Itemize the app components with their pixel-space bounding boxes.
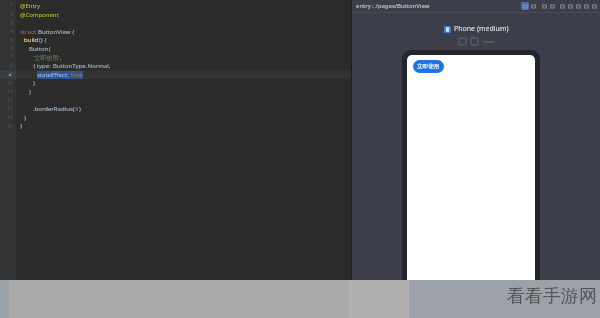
staticText: 看看手游网	[507, 285, 597, 308]
staticText: 5	[10, 37, 13, 44]
staticText: Button	[29, 45, 49, 53]
button[interactable]: Layout	[540, 2, 548, 10]
button[interactable]: Split view	[558, 2, 566, 10]
staticText: 3	[10, 19, 13, 26]
button[interactable]: More	[590, 2, 598, 10]
button[interactable]: Rotate device	[459, 38, 466, 45]
staticText: { type:	[33, 62, 53, 70]
staticText: () {	[39, 36, 47, 44]
staticText: '立即使用'	[33, 54, 60, 62]
staticText: ,	[60, 54, 62, 62]
button[interactable]: Inspect	[529, 2, 537, 10]
button[interactable]: Zoom	[548, 2, 556, 10]
staticText: }	[24, 114, 27, 122]
staticText: @Component	[20, 11, 59, 19]
staticText: 8	[75, 105, 79, 113]
staticText: struct	[20, 28, 38, 36]
staticText: 2	[10, 11, 13, 18]
staticText: 10	[7, 80, 13, 87]
button[interactable]: Rotate	[566, 2, 574, 10]
button[interactable]: Device settings	[471, 38, 478, 45]
staticText: (	[49, 45, 51, 53]
staticText: }	[33, 79, 36, 87]
staticText: build	[24, 36, 39, 44]
staticText: {	[72, 28, 75, 36]
staticText: 13	[7, 105, 13, 112]
staticText: 立即使用	[417, 63, 440, 70]
staticText: 15	[7, 123, 13, 130]
button[interactable]: Settings	[574, 2, 582, 10]
button[interactable]: Expand	[582, 2, 590, 10]
staticText: 9	[10, 71, 13, 78]
button[interactable]: Refresh preview	[521, 2, 529, 10]
staticText: 4	[10, 28, 13, 35]
staticText: 12	[7, 97, 13, 104]
staticText: 6	[10, 45, 13, 52]
staticText: )	[29, 88, 31, 96]
staticText: )	[79, 105, 81, 113]
staticText: .borderRadius(	[33, 105, 75, 113]
staticText: ButtonView	[38, 28, 72, 36]
button[interactable]: Zoom slider	[483, 39, 494, 45]
staticText: 7	[10, 54, 13, 61]
staticText: 1	[10, 2, 13, 9]
staticText: Phone (medium)	[454, 24, 509, 34]
staticText: 14	[7, 114, 13, 121]
staticText: true	[71, 71, 83, 79]
staticText: entry : /pages/ButtonView	[356, 2, 430, 10]
button[interactable]: 立即使用	[413, 60, 444, 73]
staticText: 11	[7, 88, 13, 95]
staticText: stateEffect:	[37, 71, 71, 79]
staticText: @Entry	[20, 2, 41, 10]
staticText: }	[20, 122, 23, 130]
staticText: 8	[10, 62, 13, 69]
staticText: ButtonType	[53, 62, 86, 70]
staticText: .Normal,	[86, 62, 111, 70]
